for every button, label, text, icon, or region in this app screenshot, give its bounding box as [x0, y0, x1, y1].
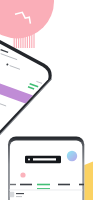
button[interactable]: App promotion	[0, 0, 93, 200]
